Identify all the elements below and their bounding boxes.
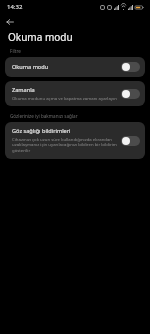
staticText: 14:32 <box>7 3 23 11</box>
button[interactable]: Aç/Kapat <box>121 136 140 146</box>
staticText: Okuma modu <box>8 30 73 44</box>
button[interactable]: Zamanla <box>5 81 145 106</box>
button[interactable]: Okuma modu <box>5 57 145 77</box>
button[interactable]: Geri <box>2 14 18 30</box>
staticText: Gözlerinize iyi bakmanızı sağlar <box>10 113 78 119</box>
button[interactable]: Aç/Kapat <box>121 89 140 99</box>
button[interactable]: Göz sağlığı bildirimleri <box>5 122 145 159</box>
button[interactable]: Aç/Kapat <box>121 62 140 72</box>
staticText: Filtre <box>10 48 21 54</box>
staticText: Zamanla <box>12 86 35 94</box>
staticText: Okuma modu <box>12 63 49 71</box>
staticText: Okuma modunu açma ve kapatma zamanı ayar… <box>12 95 117 101</box>
staticText: Göz sağlığı bildirimleri <box>12 127 71 135</box>
staticText: Cihazınızı çok uzun süre kullandığınızda… <box>12 136 117 154</box>
